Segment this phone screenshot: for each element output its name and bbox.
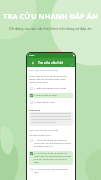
staticText: 3. Điều tiết an toàn.: [34, 101, 72, 104]
staticText: 10:51: [29, 54, 73, 57]
staticText: TRA CỨU NHANH ĐÁP ÁN: [0, 11, 101, 21]
staticText: 1. Là tốc độ tối đa cho phép xe chạy the…: [34, 139, 72, 148]
staticText: Tốc độ tối đa là gì?: [29, 133, 73, 136]
button[interactable]: 1. Là tốc độ tối đa cho phép xe chạy the…: [29, 138, 73, 149]
button[interactable]: 2. Là tốc độ tối đa cho phép xe chạy the…: [29, 151, 73, 165]
button[interactable]: 3. Điều tiết an toàn.: [29, 100, 73, 105]
staticText: 2. Là tốc độ tối đa cho phép xe chạy the…: [34, 152, 72, 164]
staticText: 2. Điều chỉnh an toàn.: [34, 94, 72, 97]
staticText: Câu 13 (ID: câu hỏi / Mã bộ đề): [29, 129, 73, 132]
staticText: 3. Là trong các trường hợp khác biệt.: [34, 168, 72, 174]
button[interactable]: 3. Là trong các trường hợp khác biệt.: [29, 167, 73, 175]
staticText: Phần làm thủ tục kỹ thuật xe khi đang ch…: [29, 74, 73, 83]
staticText: Câu 12 (ID: câu hỏi / Mã bộ đề): [29, 69, 73, 72]
staticText: 1. Điều tiết đường và kỹ thuật.: [34, 87, 72, 90]
button[interactable]: 1. Điều tiết đường và kỹ thuật.: [29, 86, 73, 91]
staticText: Dễ dàng tra cứu câu hỏi theo nội dung và…: [9, 26, 92, 31]
staticText: Giải thích: [29, 108, 73, 111]
staticText: Tra cứu câu hỏi: [38, 60, 72, 65]
button[interactable]: Back: [30, 60, 36, 66]
button[interactable]: 2. Điều chỉnh an toàn.: [29, 93, 73, 98]
